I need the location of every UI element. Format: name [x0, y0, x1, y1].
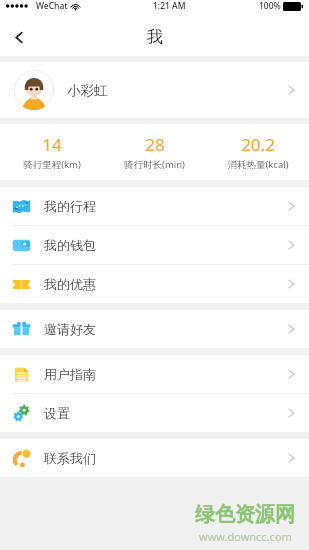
staticText: 设置 [44, 405, 70, 421]
staticText: 14 [42, 133, 62, 156]
button[interactable]: 设置 [0, 394, 309, 432]
staticText: 我的优惠 [44, 276, 96, 292]
staticText: 联系我们 [44, 450, 96, 466]
button[interactable]: Back [0, 18, 38, 56]
staticText: WeChat [36, 0, 68, 12]
button[interactable]: 我的优惠 [0, 265, 309, 303]
staticText: 用户指南 [44, 366, 96, 382]
button[interactable]: 联系我们 [0, 439, 309, 477]
staticText: 骑行时长(min) [124, 158, 185, 171]
staticText: 我 [147, 27, 163, 47]
button[interactable]: 邀请好友 [0, 310, 309, 348]
staticText: 我的行程 [44, 198, 96, 214]
button[interactable]: 小彩虹 [0, 62, 309, 118]
staticText: 100% [259, 0, 281, 12]
staticText: 28 [145, 133, 165, 156]
staticText: 1:21 AM [153, 0, 186, 12]
button[interactable]: 我的行程 [0, 187, 309, 225]
staticText: 绿色资源网 [195, 502, 295, 527]
staticText: 我的钱包 [44, 237, 96, 253]
staticText: 小彩虹 [67, 82, 108, 99]
button[interactable]: 我的钱包 [0, 226, 309, 264]
staticText: www.downcc.com [199, 529, 292, 544]
button[interactable]: 用户指南 [0, 355, 309, 393]
staticText: 消耗热量(kcal) [227, 158, 289, 171]
staticText: 骑行里程(km) [23, 158, 81, 171]
staticText: 邀请好友 [44, 321, 96, 337]
staticText: 20.2 [241, 133, 275, 156]
